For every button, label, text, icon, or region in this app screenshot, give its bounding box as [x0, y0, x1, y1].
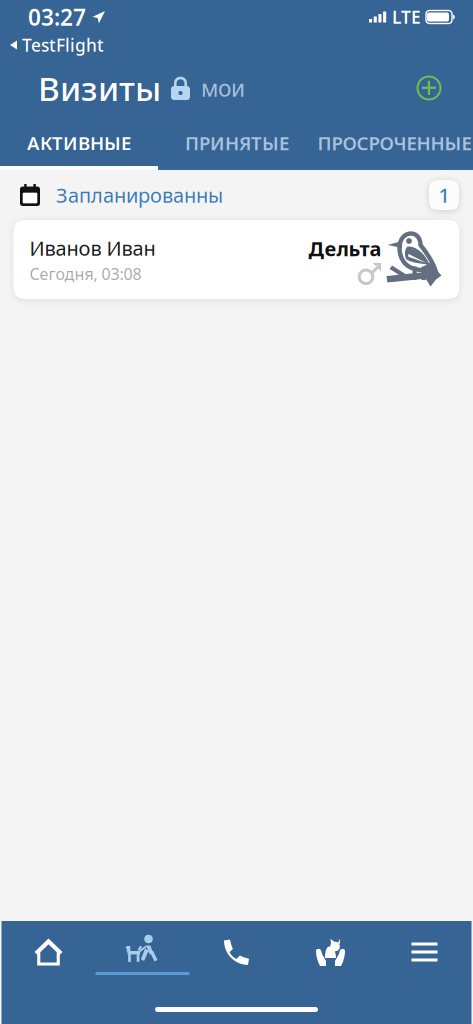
button[interactable]: Home — [1, 926, 95, 978]
button[interactable]: Запланированны — [0, 170, 473, 220]
button[interactable]: Visits — [95, 926, 189, 978]
button[interactable]: Pets — [283, 926, 377, 978]
button[interactable]: Menu — [377, 926, 471, 978]
button[interactable]: Иванов Иван — [13, 220, 459, 299]
staticText: TestFlight — [22, 33, 104, 56]
staticText: LTE — [392, 5, 421, 28]
staticText: ПРИНЯТЫЕ — [185, 131, 289, 155]
button[interactable]: ПРИНЯТЫЕ — [158, 120, 316, 166]
staticText: Запланированны — [56, 182, 223, 208]
staticText: Дельта — [308, 235, 381, 262]
staticText: АКТИВНЫЕ — [27, 131, 131, 155]
staticText: 1 — [438, 182, 449, 208]
button[interactable]: АКТИВНЫЕ — [0, 120, 158, 166]
button[interactable]: ПРОСРОЧЕННЫЕ — [316, 120, 473, 166]
staticText: ПРОСРОЧЕННЫЕ — [317, 131, 471, 155]
staticText: Визиты — [38, 66, 161, 110]
staticText: 03:27 — [28, 2, 86, 32]
staticText: Иванов Иван — [29, 235, 155, 261]
staticText: мои — [201, 73, 245, 103]
button[interactable]: Add visit — [407, 66, 451, 110]
button[interactable]: Calls — [189, 926, 283, 978]
staticText: Сегодня, 03:08 — [29, 263, 141, 284]
